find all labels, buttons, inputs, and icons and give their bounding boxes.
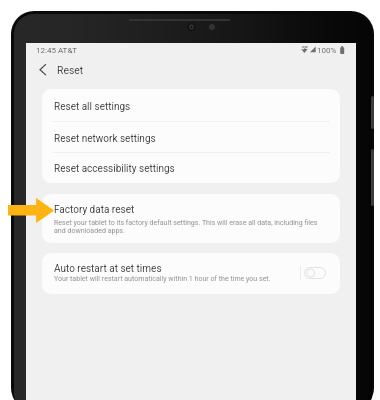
staticText: Reset: [57, 64, 84, 76]
button[interactable]: Back: [28, 61, 58, 78]
staticText: Reset all settings: [54, 101, 131, 113]
staticText: Your tablet will restart automatically w…: [54, 274, 271, 282]
staticText: Reset network settings: [54, 133, 156, 145]
button[interactable]: Reset network settings: [42, 122, 340, 153]
staticText: 100%: [317, 46, 337, 55]
button[interactable]: Auto restart at set times: [42, 253, 340, 294]
staticText: Reset accessibility settings: [54, 163, 175, 175]
staticText: Factory data reset: [54, 204, 135, 216]
staticText: Auto restart at set times: [54, 263, 162, 275]
staticText: 12:45 AT&T: [36, 46, 78, 55]
button[interactable]: Factory data reset: [42, 194, 340, 243]
button[interactable]: Reset all settings: [42, 89, 340, 122]
button[interactable]: Auto restart toggle: [304, 267, 326, 279]
button[interactable]: Reset accessibility settings: [42, 153, 340, 183]
staticText: Reset your tablet to its factory default…: [54, 218, 328, 235]
